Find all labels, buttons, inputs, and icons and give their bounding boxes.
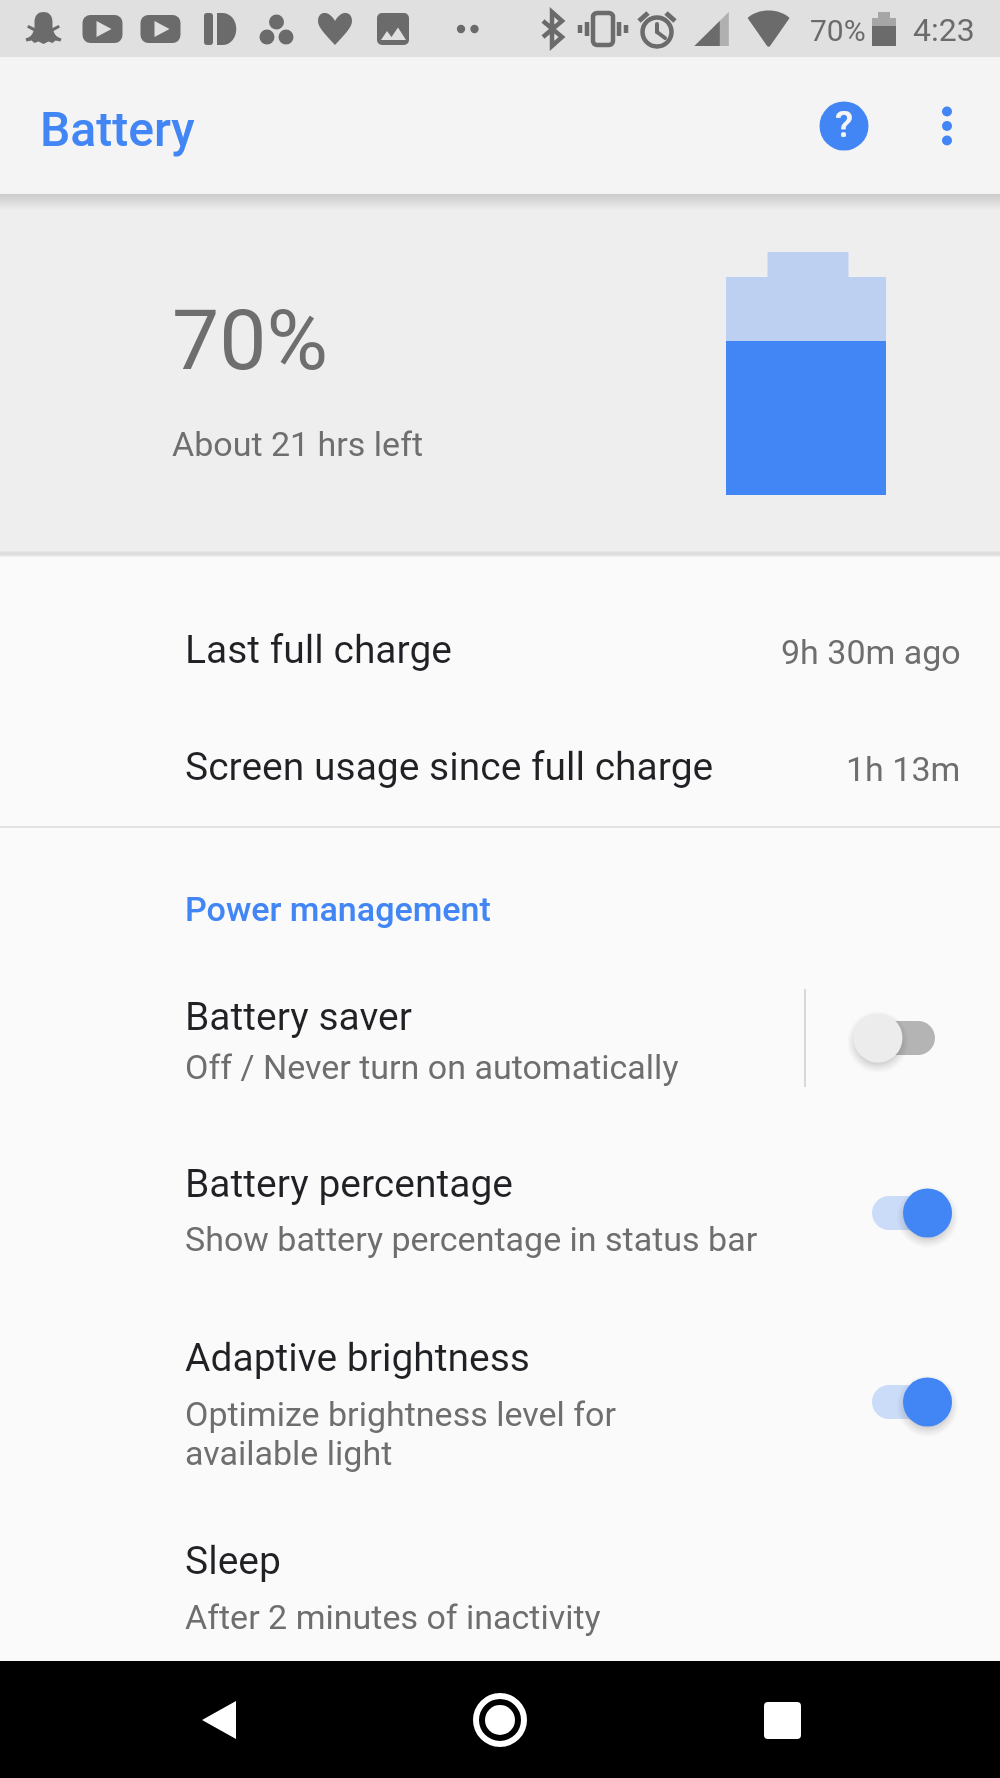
staticText: Sleep bbox=[185, 1538, 281, 1584]
button[interactable]: Recents bbox=[734, 1672, 830, 1768]
button[interactable]: Battery percentage bbox=[825, 1178, 1000, 1248]
button[interactable]: Battery saver bbox=[825, 1003, 1000, 1073]
button[interactable] bbox=[0, 1122, 1000, 1282]
staticText: Power management bbox=[185, 889, 491, 929]
staticText: After 2 minutes of inactivity bbox=[185, 1597, 601, 1637]
staticText: 1h 13m bbox=[846, 749, 961, 789]
staticText: Battery bbox=[40, 101, 195, 157]
button[interactable]: Sleep bbox=[0, 1497, 1000, 1661]
staticText: Battery saver bbox=[185, 994, 412, 1040]
button[interactable]: Back bbox=[171, 1672, 267, 1768]
button[interactable]: Home bbox=[452, 1672, 548, 1768]
staticText: Last full charge bbox=[185, 627, 453, 673]
button[interactable]: Last full charge bbox=[0, 557, 1000, 674]
staticText: 70% bbox=[810, 13, 866, 48]
staticText: About 21 hrs left bbox=[172, 424, 424, 464]
staticText: Battery percentage bbox=[185, 1161, 514, 1207]
staticText: Show battery percentage in status bar bbox=[185, 1219, 758, 1259]
button[interactable]: Adaptive brightness bbox=[825, 1367, 1000, 1437]
button[interactable]: Help bbox=[796, 78, 892, 174]
button[interactable]: Screen usage since full charge bbox=[0, 674, 1000, 791]
staticText: ? bbox=[835, 103, 854, 146]
staticText: Off / Never turn on automatically bbox=[185, 1047, 679, 1087]
button[interactable] bbox=[0, 1294, 1000, 1497]
staticText: 9h 30m ago bbox=[781, 632, 961, 672]
staticText: 4:23 bbox=[913, 11, 975, 49]
staticText: Optimize brightness level for bbox=[185, 1394, 616, 1434]
staticText: Adaptive brightness bbox=[185, 1335, 531, 1381]
staticText: available light bbox=[185, 1433, 393, 1473]
button[interactable] bbox=[0, 958, 1000, 1106]
staticText: Screen usage since full charge bbox=[185, 744, 714, 790]
staticText: 70% bbox=[172, 291, 328, 389]
button[interactable]: More options bbox=[899, 78, 995, 174]
